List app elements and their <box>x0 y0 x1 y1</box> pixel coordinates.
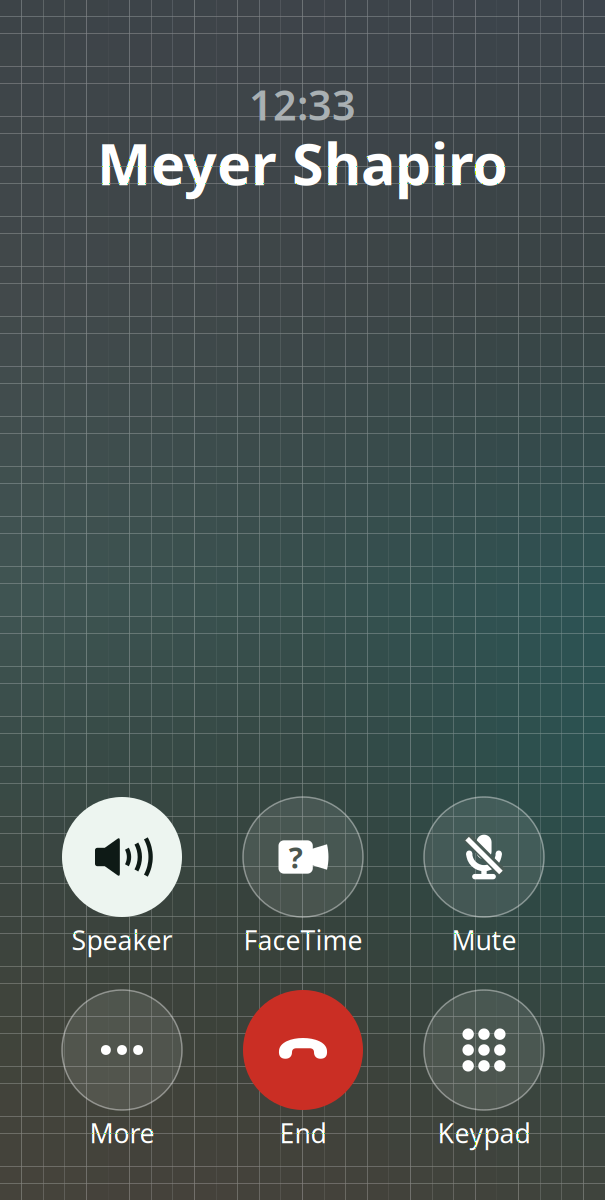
staticText: Keypad <box>437 1115 530 1151</box>
staticText: Speaker <box>71 922 172 958</box>
staticText: Meyer Shapiro <box>97 125 508 201</box>
button[interactable]: More <box>37 990 207 1156</box>
staticText: Mute <box>451 922 516 958</box>
staticText: FaceTime <box>243 922 362 958</box>
button[interactable]: ? <box>218 797 388 963</box>
button[interactable]: Keypad <box>399 990 569 1156</box>
staticText: End <box>279 1115 326 1151</box>
button[interactable]: End <box>218 990 388 1156</box>
button[interactable]: Speaker <box>37 797 207 963</box>
staticText: More <box>89 1115 154 1151</box>
staticText: 12:33 <box>249 77 356 132</box>
staticText: ? <box>289 837 303 876</box>
button[interactable]: Mute <box>399 797 569 963</box>
